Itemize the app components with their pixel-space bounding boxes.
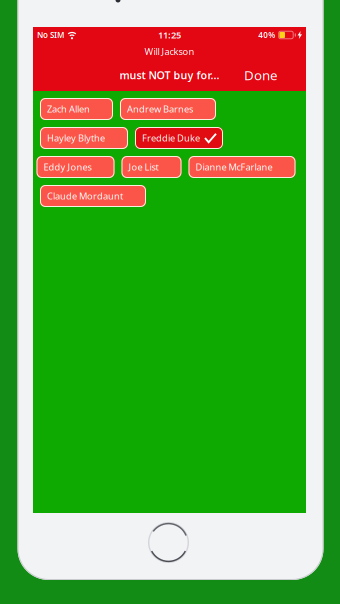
staticText: Joe List xyxy=(128,161,158,173)
staticText: Dianne McFarlane xyxy=(195,161,272,173)
staticText: No SIM xyxy=(37,30,64,40)
button[interactable]: Claude Mordaunt xyxy=(40,185,146,207)
button[interactable]: Zach Allen xyxy=(40,98,113,120)
button[interactable]: Andrew Barnes xyxy=(120,98,216,120)
button[interactable]: Hayley Blythe xyxy=(40,127,128,149)
staticText: Freddie Duke xyxy=(142,132,200,144)
staticText: Hayley Blythe xyxy=(47,132,105,144)
staticText: Andrew Barnes xyxy=(127,103,193,115)
button[interactable]: Eddy Jones xyxy=(36,156,114,178)
button[interactable]: Freddie Duke xyxy=(135,127,223,149)
button[interactable]: Joe List xyxy=(121,156,181,178)
button[interactable]: Done xyxy=(240,61,282,89)
staticText: Eddy Jones xyxy=(43,161,91,173)
staticText: 11:25 xyxy=(158,29,181,41)
staticText: Done xyxy=(244,66,278,84)
button[interactable]: Dianne McFarlane xyxy=(188,156,295,178)
staticText: 40% xyxy=(258,30,275,40)
staticText: must NOT buy for... xyxy=(119,68,219,82)
staticText: Claude Mordaunt xyxy=(47,190,123,202)
staticText: Zach Allen xyxy=(47,103,90,115)
staticText: Will Jackson xyxy=(144,45,194,58)
